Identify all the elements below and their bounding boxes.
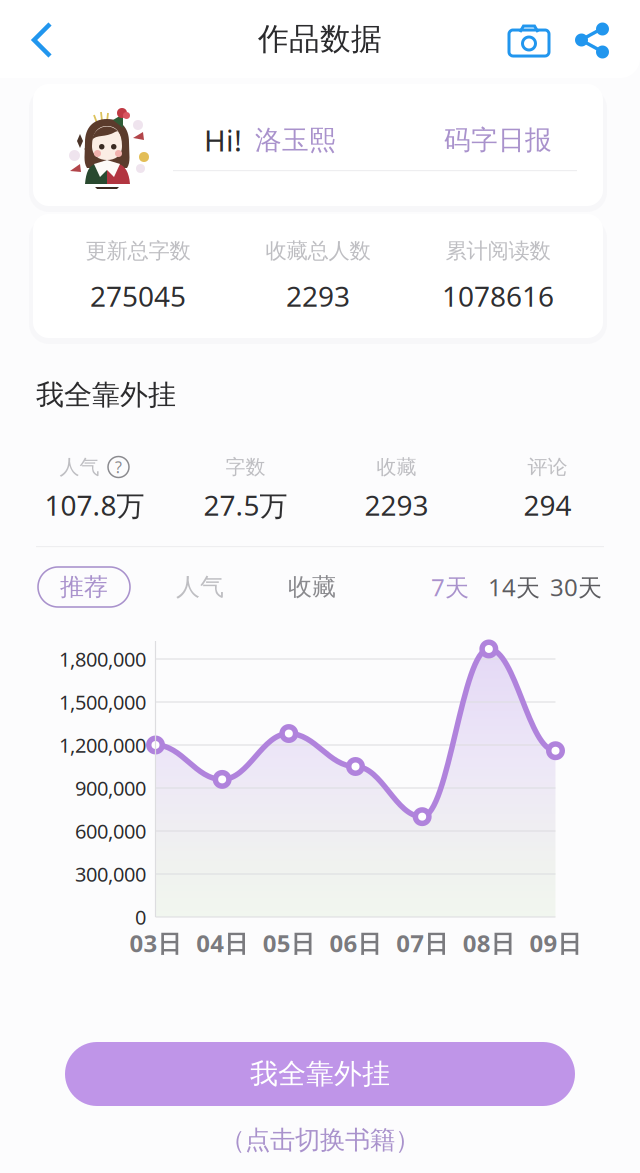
staticText: 更新总字数 xyxy=(85,238,190,264)
staticText: 人气 xyxy=(176,572,224,602)
staticText: 我全靠外挂 xyxy=(250,1057,390,1091)
staticText: 08日 xyxy=(463,927,515,959)
button[interactable]: Hi! xyxy=(33,84,603,206)
staticText: 04日 xyxy=(196,927,248,959)
button[interactable]: 30天 xyxy=(540,567,612,607)
staticText: 洛玉熙 xyxy=(255,124,336,156)
staticText: 累计阅读数 xyxy=(445,238,550,264)
staticText: 275045 xyxy=(90,277,186,315)
staticText: Hi! xyxy=(204,120,242,159)
button[interactable]: 收藏 xyxy=(272,567,352,607)
button[interactable]: 截图 xyxy=(494,8,564,72)
button[interactable]: 7天 xyxy=(420,567,480,607)
staticText: 作品数据 xyxy=(258,20,382,58)
staticText: 03日 xyxy=(129,927,181,959)
staticText: 1,200,000 xyxy=(59,732,146,758)
staticText: 收藏 xyxy=(376,455,416,479)
staticText: 107.8万 xyxy=(44,486,144,524)
staticText: 收藏 xyxy=(288,572,336,602)
staticText: 7天 xyxy=(431,571,469,603)
staticText: 06日 xyxy=(329,927,381,959)
button[interactable]: 返回 xyxy=(8,8,78,72)
staticText: 1,800,000 xyxy=(59,646,146,672)
staticText: 收藏总人数 xyxy=(265,238,370,264)
staticText: 人气 xyxy=(59,455,99,479)
staticText: 推荐 xyxy=(60,572,108,602)
button[interactable]: 分享 xyxy=(558,8,626,72)
button[interactable]: （点击切换书籍） xyxy=(0,1118,640,1162)
staticText: ? xyxy=(115,456,122,478)
staticText: 0 xyxy=(135,904,146,930)
staticText: 300,000 xyxy=(75,861,146,887)
staticText: 600,000 xyxy=(75,818,146,844)
button[interactable]: 推荐 xyxy=(38,567,130,607)
staticText: 05日 xyxy=(263,927,315,959)
staticText: 14天 xyxy=(488,571,540,603)
button[interactable]: 人气 xyxy=(160,567,240,607)
staticText: 294 xyxy=(523,486,571,524)
staticText: 1,500,000 xyxy=(59,689,146,715)
button[interactable]: 14天 xyxy=(478,567,550,607)
staticText: 09日 xyxy=(529,927,581,959)
staticText: 2293 xyxy=(286,277,350,315)
staticText: 我全靠外挂 xyxy=(36,378,176,412)
staticText: 1078616 xyxy=(442,277,554,315)
staticText: 评论 xyxy=(527,455,567,479)
staticText: 30天 xyxy=(550,571,602,603)
button[interactable]: 我全靠外挂 xyxy=(65,1042,575,1106)
staticText: （点击切换书籍） xyxy=(220,1124,420,1155)
staticText: 07日 xyxy=(396,927,448,959)
staticText: 码字日报 xyxy=(444,124,552,156)
staticText: 字数 xyxy=(225,455,265,479)
staticText: 27.5万 xyxy=(203,486,287,524)
staticText: 900,000 xyxy=(75,775,146,801)
staticText: 2293 xyxy=(364,486,428,524)
